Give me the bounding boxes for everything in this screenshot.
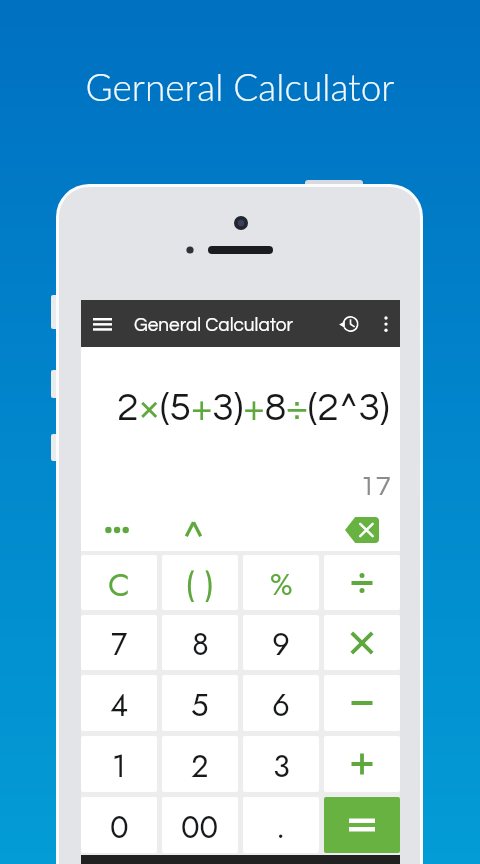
button[interactable]: Percent (243, 555, 319, 610)
button[interactable]: 6 (243, 675, 319, 731)
button[interactable]: 9 (243, 615, 319, 670)
button[interactable]: 2 (162, 736, 238, 792)
button[interactable]: 3 (243, 736, 319, 792)
staticText: 2 (191, 744, 209, 789)
button[interactable]: Plus (324, 736, 400, 792)
staticText: 3 (273, 744, 290, 789)
staticText: 8 (192, 622, 209, 667)
staticText: C (108, 562, 130, 608)
staticText: 0 (110, 805, 129, 850)
button[interactable]: Clear (81, 555, 157, 610)
button[interactable]: Equals (324, 797, 400, 853)
button[interactable]: 7 (81, 615, 157, 670)
button[interactable]: History (332, 306, 368, 342)
staticText: 9 (272, 622, 290, 667)
button[interactable]: Parentheses (162, 555, 238, 610)
staticText: % (270, 563, 293, 606)
staticText: 1 (112, 744, 126, 789)
staticText: . (276, 805, 286, 850)
button[interactable]: More options (373, 311, 399, 337)
staticText: 6 (272, 683, 290, 728)
button[interactable]: Divide (324, 555, 400, 610)
button[interactable]: 4 (81, 675, 157, 731)
button[interactable]: 0 (81, 797, 157, 853)
staticText: ( ) (185, 562, 215, 608)
staticText: 00 (181, 805, 219, 850)
staticText: 7 (111, 622, 128, 667)
button[interactable]: 00 (162, 797, 238, 853)
staticText: 2×(5+3)+8÷(2^3) (117, 388, 390, 428)
staticText: 5 (191, 683, 209, 728)
staticText: Gerneral Calculator (0, 64, 480, 108)
button[interactable]: 8 (162, 615, 238, 670)
button[interactable]: Menu (83, 305, 121, 343)
button[interactable]: 1 (81, 736, 157, 792)
staticText: 4 (110, 683, 129, 728)
button[interactable]: Multiply (324, 615, 400, 670)
button[interactable]: 5 (162, 675, 238, 731)
button[interactable]: Backspace (345, 517, 379, 543)
button[interactable]: Power (153, 505, 233, 551)
staticText: General Calculator (134, 315, 294, 335)
staticText: 17 (360, 472, 391, 501)
button[interactable]: More functions (81, 505, 153, 551)
button[interactable]: Minus (324, 675, 400, 731)
button[interactable]: Decimal point (243, 797, 319, 853)
